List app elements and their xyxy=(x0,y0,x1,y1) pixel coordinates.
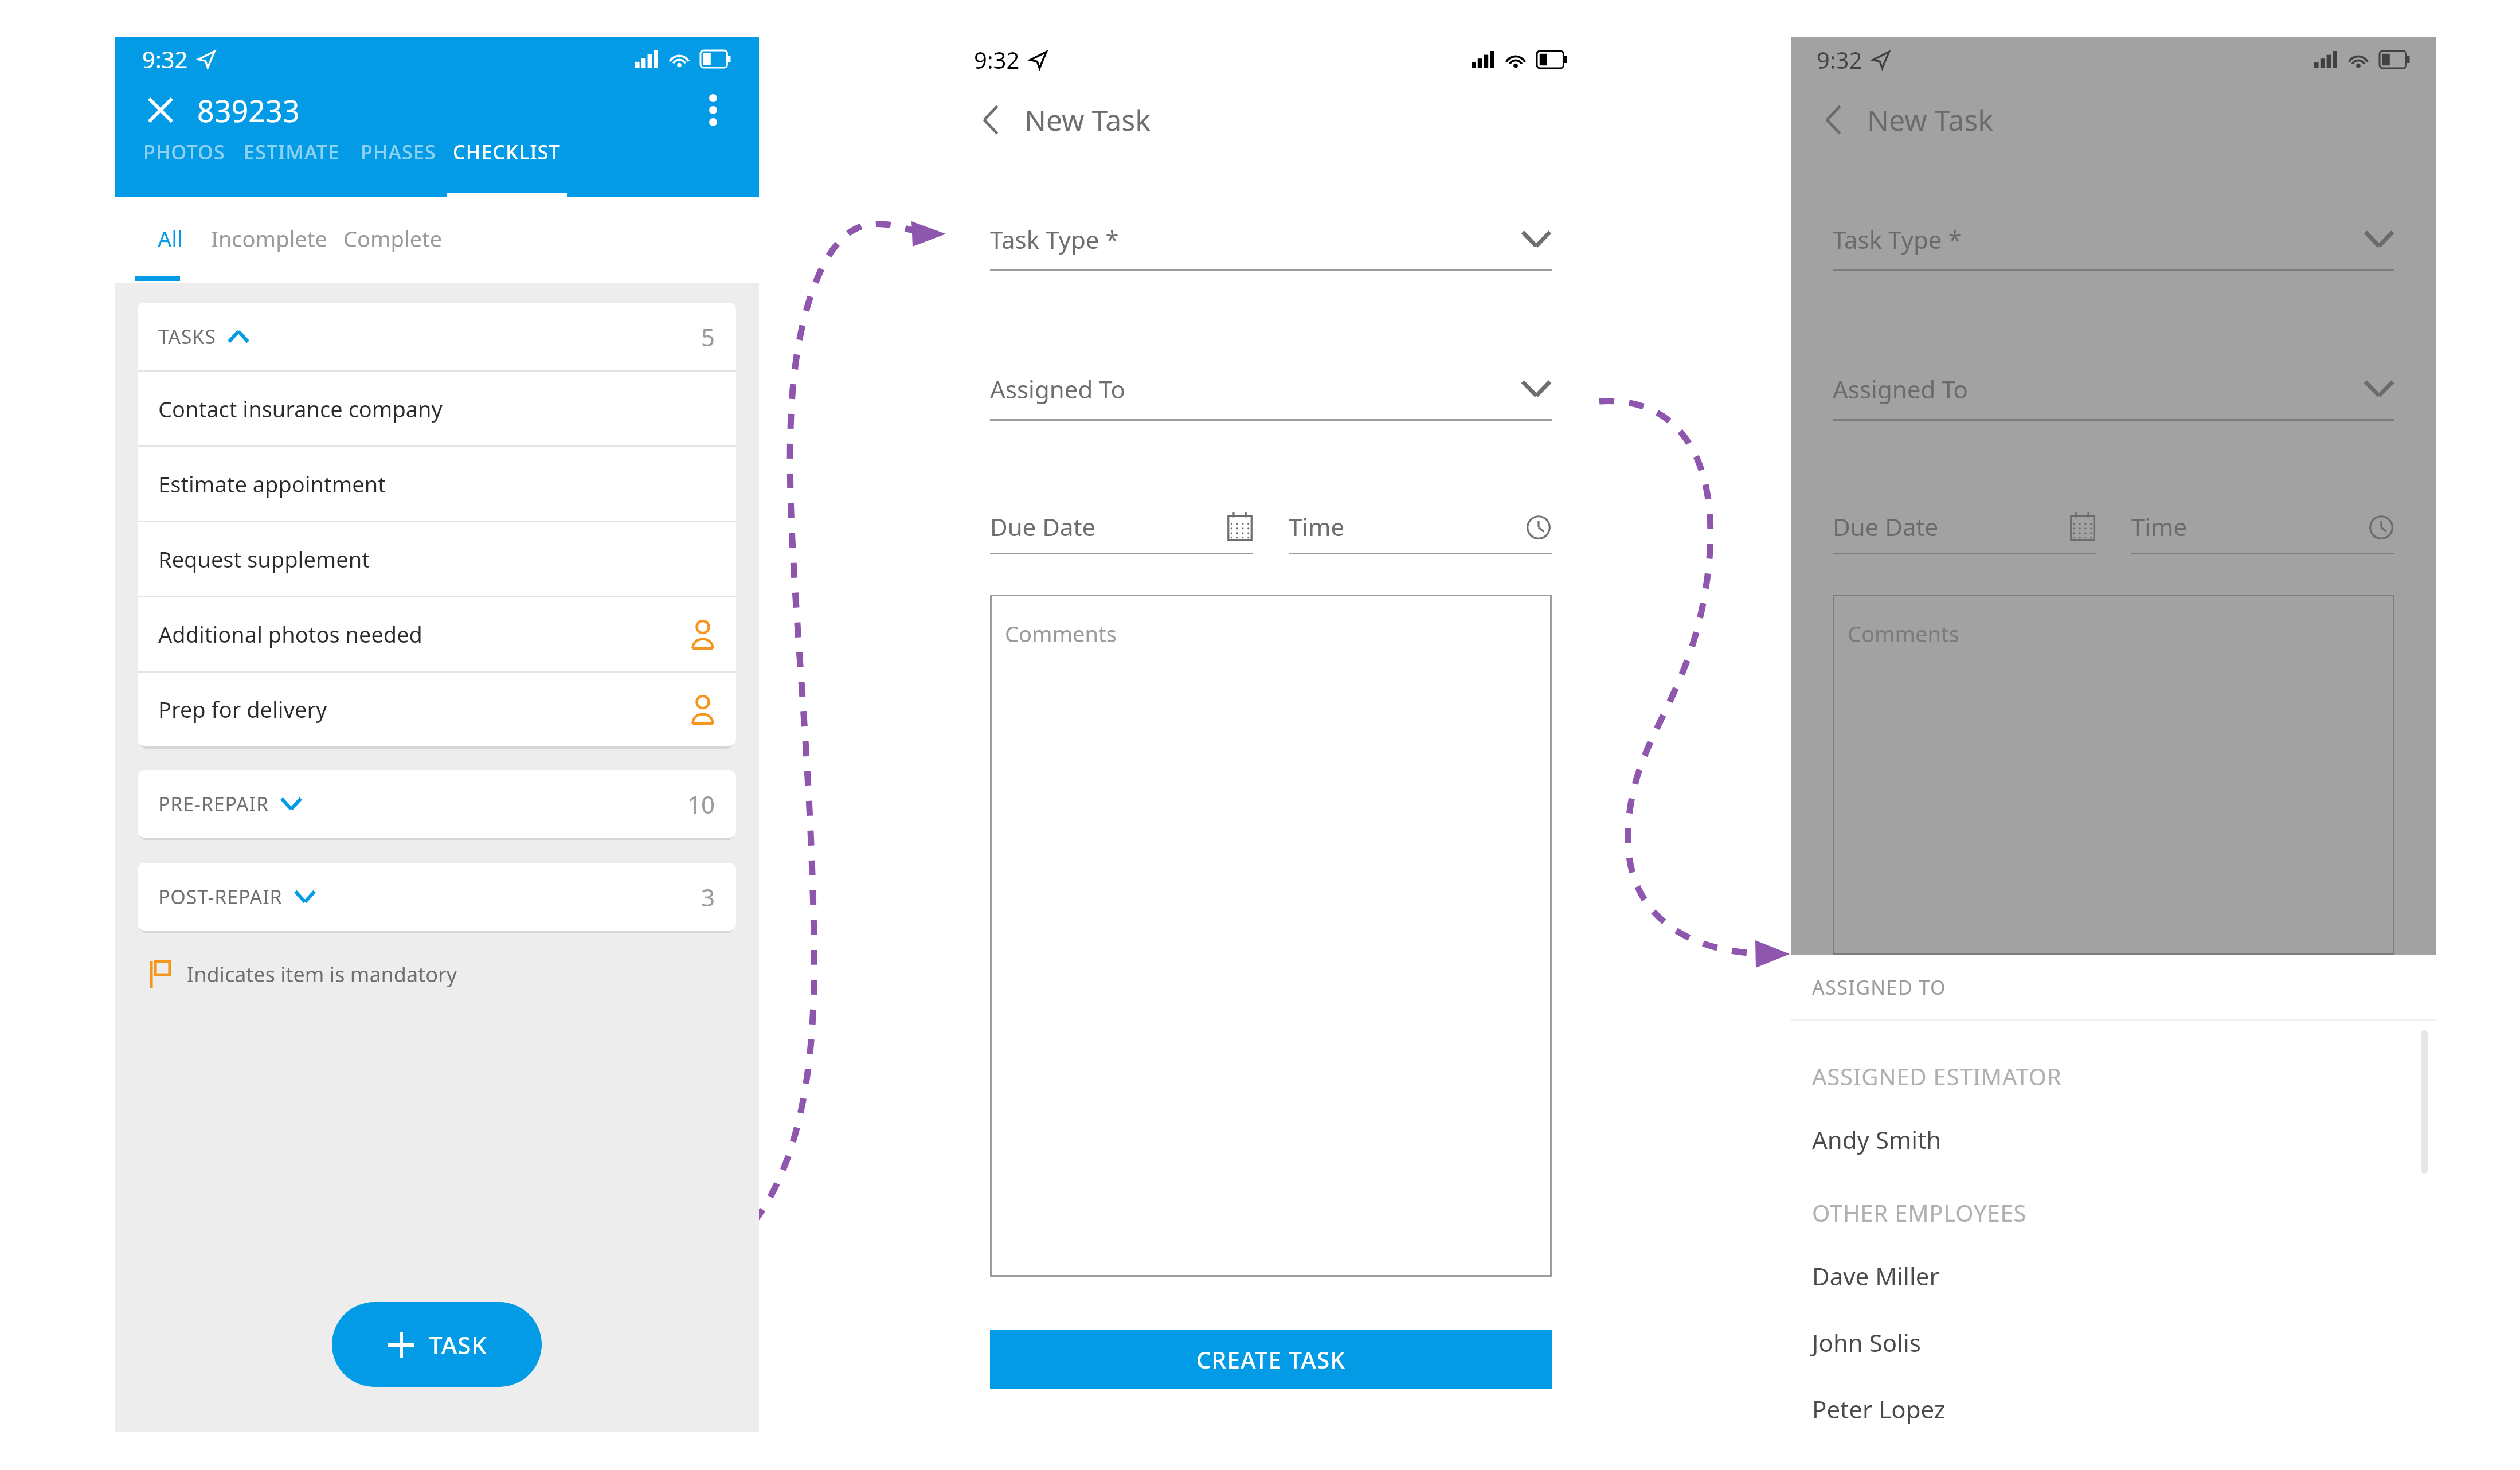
staticText: Due Date xyxy=(1833,510,1939,543)
staticText: ASSIGNED ESTIMATOR xyxy=(1812,1061,2062,1092)
staticText: ASSIGNED TO xyxy=(1812,974,1946,1000)
staticText: TASK xyxy=(429,1328,487,1361)
button[interactable]: John Solis xyxy=(1791,1309,2436,1375)
button[interactable]: Comments xyxy=(1833,595,2394,955)
staticText: Assigned To xyxy=(990,373,1125,405)
staticText: Task Type * xyxy=(990,223,1119,256)
staticText: Prep for delivery xyxy=(158,694,327,724)
button[interactable]: Time xyxy=(2131,508,2394,554)
staticText: Due Date xyxy=(990,510,1096,543)
button[interactable]: TASK xyxy=(332,1302,542,1387)
staticText: CREATE TASK xyxy=(1196,1344,1346,1375)
staticText: CHECKLIST xyxy=(453,139,561,165)
staticText: Time xyxy=(1289,510,1345,543)
button[interactable]: Contact insurance company xyxy=(138,372,736,445)
button[interactable]: Back xyxy=(1812,99,1854,141)
staticText: PHASES xyxy=(361,139,436,165)
staticText: New Task xyxy=(1024,100,1151,139)
button[interactable]: Andy Smith xyxy=(1791,1106,2436,1172)
button[interactable]: Incomplete xyxy=(205,197,332,283)
staticText: ESTIMATE xyxy=(244,139,340,165)
staticText: Assigned To xyxy=(1833,373,1968,405)
button[interactable]: Assigned To xyxy=(1833,369,2394,421)
button[interactable]: Task Type * xyxy=(990,219,1552,271)
staticText: Dave Miller xyxy=(1812,1260,1939,1292)
button[interactable]: POST-REPAIR xyxy=(138,863,736,931)
button[interactable]: Request supplement xyxy=(138,522,736,596)
button[interactable]: TASKS xyxy=(138,303,736,370)
button[interactable]: All xyxy=(135,197,205,283)
staticText: Contact insurance company xyxy=(158,394,443,424)
staticText: Peter Lopez xyxy=(1812,1393,1946,1425)
staticText: PRE-REPAIR xyxy=(158,791,269,817)
staticText: Comments xyxy=(1848,619,1959,648)
button[interactable]: Complete xyxy=(332,197,453,283)
staticText: Andy Smith xyxy=(1812,1123,1942,1156)
button[interactable]: Assigned To xyxy=(990,369,1552,421)
button[interactable]: Time xyxy=(1289,508,1552,554)
button[interactable]: More options xyxy=(692,89,734,131)
button[interactable]: Due Date xyxy=(990,508,1253,554)
staticText: PHOTOS xyxy=(143,139,225,165)
button[interactable]: Due Date xyxy=(1833,508,2096,554)
staticText: New Task xyxy=(1867,100,1993,139)
button[interactable]: CREATE TASK xyxy=(990,1330,1552,1389)
button[interactable]: Peter Lopez xyxy=(1791,1375,2436,1442)
staticText: Task Type * xyxy=(1833,223,1962,256)
button[interactable]: Additional photos needed xyxy=(138,597,736,671)
staticText: TASKS xyxy=(158,323,216,350)
staticText: 5 xyxy=(701,320,715,353)
staticText: Estimate appointment xyxy=(158,469,386,499)
staticText: 9:32 xyxy=(142,44,188,75)
staticText: All xyxy=(158,224,183,253)
button[interactable]: ESTIMATE xyxy=(233,139,350,197)
staticText: 9:32 xyxy=(974,44,1020,75)
staticText: POST-REPAIR xyxy=(158,883,283,910)
button[interactable]: PRE-REPAIR xyxy=(138,770,736,838)
button[interactable]: Close xyxy=(140,89,181,131)
button[interactable]: PHASES xyxy=(350,139,447,197)
staticText: Indicates item is mandatory xyxy=(187,960,457,988)
button[interactable]: Comments xyxy=(990,595,1552,1277)
button[interactable]: CHECKLIST xyxy=(447,139,567,197)
button[interactable]: PHOTOS xyxy=(135,139,233,197)
staticText: Time xyxy=(2131,510,2188,543)
staticText: Additional photos needed xyxy=(158,619,422,649)
staticText: 839233 xyxy=(197,90,300,131)
staticText: 9:32 xyxy=(1817,44,1862,75)
staticText: Complete xyxy=(343,224,443,253)
button[interactable]: Dave Miller xyxy=(1791,1242,2436,1309)
staticText: 10 xyxy=(687,788,715,820)
staticText: Comments xyxy=(1005,619,1117,648)
staticText: Request supplement xyxy=(158,544,370,574)
staticText: John Solis xyxy=(1812,1326,1921,1359)
button[interactable]: Task Type * xyxy=(1833,219,2394,271)
staticText: Incomplete xyxy=(211,224,327,253)
button[interactable]: Estimate appointment xyxy=(138,447,736,521)
button[interactable]: Prep for delivery xyxy=(138,673,736,746)
button[interactable]: Back xyxy=(969,99,1012,141)
staticText: OTHER EMPLOYEES xyxy=(1812,1197,2027,1228)
staticText: 3 xyxy=(701,881,715,913)
